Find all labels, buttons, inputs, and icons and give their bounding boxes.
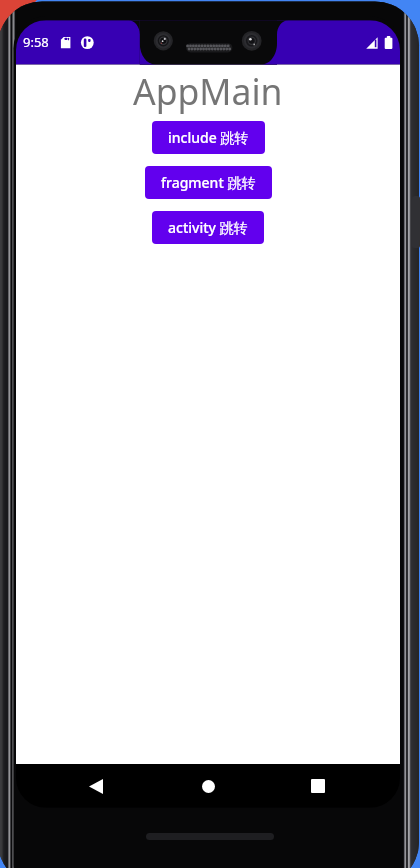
button[interactable]: fragment 跳转 [145,166,272,199]
staticText: AppMain [133,67,283,115]
button[interactable]: include 跳转 [152,121,265,154]
staticText: activity 跳转 [168,218,248,237]
button[interactable]: activity 跳转 [152,211,264,244]
button[interactable]: Home [180,764,236,808]
button[interactable]: Back [68,764,124,808]
staticText: fragment 跳转 [161,173,256,192]
staticText: include 跳转 [168,128,249,147]
button[interactable]: Recents [290,764,346,808]
staticText: 9:58 [23,33,49,51]
